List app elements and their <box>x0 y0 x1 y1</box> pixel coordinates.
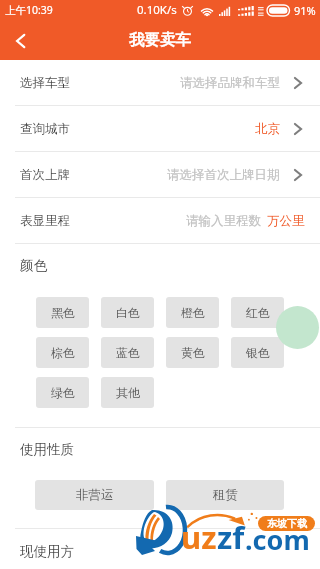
staticText: 0.10K/s <box>137 2 177 18</box>
staticText: 棕色 <box>51 345 75 360</box>
button[interactable]: 选择车型 <box>0 60 320 106</box>
staticText: 请输入里程数 <box>186 213 261 229</box>
button[interactable]: 绿色 <box>36 377 89 408</box>
staticText: 橙色 <box>181 305 205 320</box>
staticText: 红色 <box>246 305 270 320</box>
staticText: 绿色 <box>51 385 75 400</box>
staticText: 使用性质 <box>20 441 74 458</box>
button[interactable]: 租赁 <box>166 480 284 510</box>
staticText: 选择车型 <box>20 75 70 91</box>
button[interactable]: 首次上牌 <box>0 152 320 198</box>
staticText: 91% <box>294 3 316 18</box>
staticText: 万公里 <box>267 213 305 229</box>
button[interactable]: 表显里程 <box>0 198 320 244</box>
staticText: 白色 <box>116 305 140 320</box>
button[interactable]: 查询城市 <box>0 106 320 152</box>
staticText: 现使用方 <box>20 543 74 560</box>
staticText: 我要卖车 <box>129 30 191 50</box>
button[interactable]: 黑色 <box>36 297 89 328</box>
staticText: 非营运 <box>76 487 114 503</box>
button[interactable]: 银色 <box>231 337 284 368</box>
button[interactable]: 橙色 <box>166 297 219 328</box>
button[interactable]: Back <box>0 21 40 61</box>
staticText: 请选择首次上牌日期 <box>167 167 280 183</box>
staticText: 黄色 <box>181 345 205 360</box>
button[interactable]: 蓝色 <box>101 337 154 368</box>
staticText: 黑色 <box>51 305 75 320</box>
button[interactable]: 红色 <box>231 297 284 328</box>
staticText: uz <box>181 516 217 558</box>
staticText: 请选择品牌和车型 <box>180 75 280 91</box>
staticText: 东坡下载 <box>267 517 307 530</box>
button[interactable]: 白色 <box>101 297 154 328</box>
staticText: .com <box>245 521 310 558</box>
staticText: 蓝色 <box>116 345 140 360</box>
staticText: 表显里程 <box>20 213 70 229</box>
staticText: 租赁 <box>213 487 238 503</box>
staticText: 首次上牌 <box>20 167 70 183</box>
staticText: 北京 <box>255 121 280 137</box>
staticText: 银色 <box>246 345 270 360</box>
button[interactable]: 其他 <box>101 377 154 408</box>
staticText: 查询城市 <box>20 121 70 137</box>
staticText: 上午10:39 <box>5 3 53 17</box>
button[interactable]: 非营运 <box>35 480 154 510</box>
button[interactable]: 黄色 <box>166 337 219 368</box>
staticText: 其他 <box>116 385 140 400</box>
staticText: zf <box>217 516 245 558</box>
staticText: 颜色 <box>20 257 47 274</box>
button[interactable]: 棕色 <box>36 337 89 368</box>
